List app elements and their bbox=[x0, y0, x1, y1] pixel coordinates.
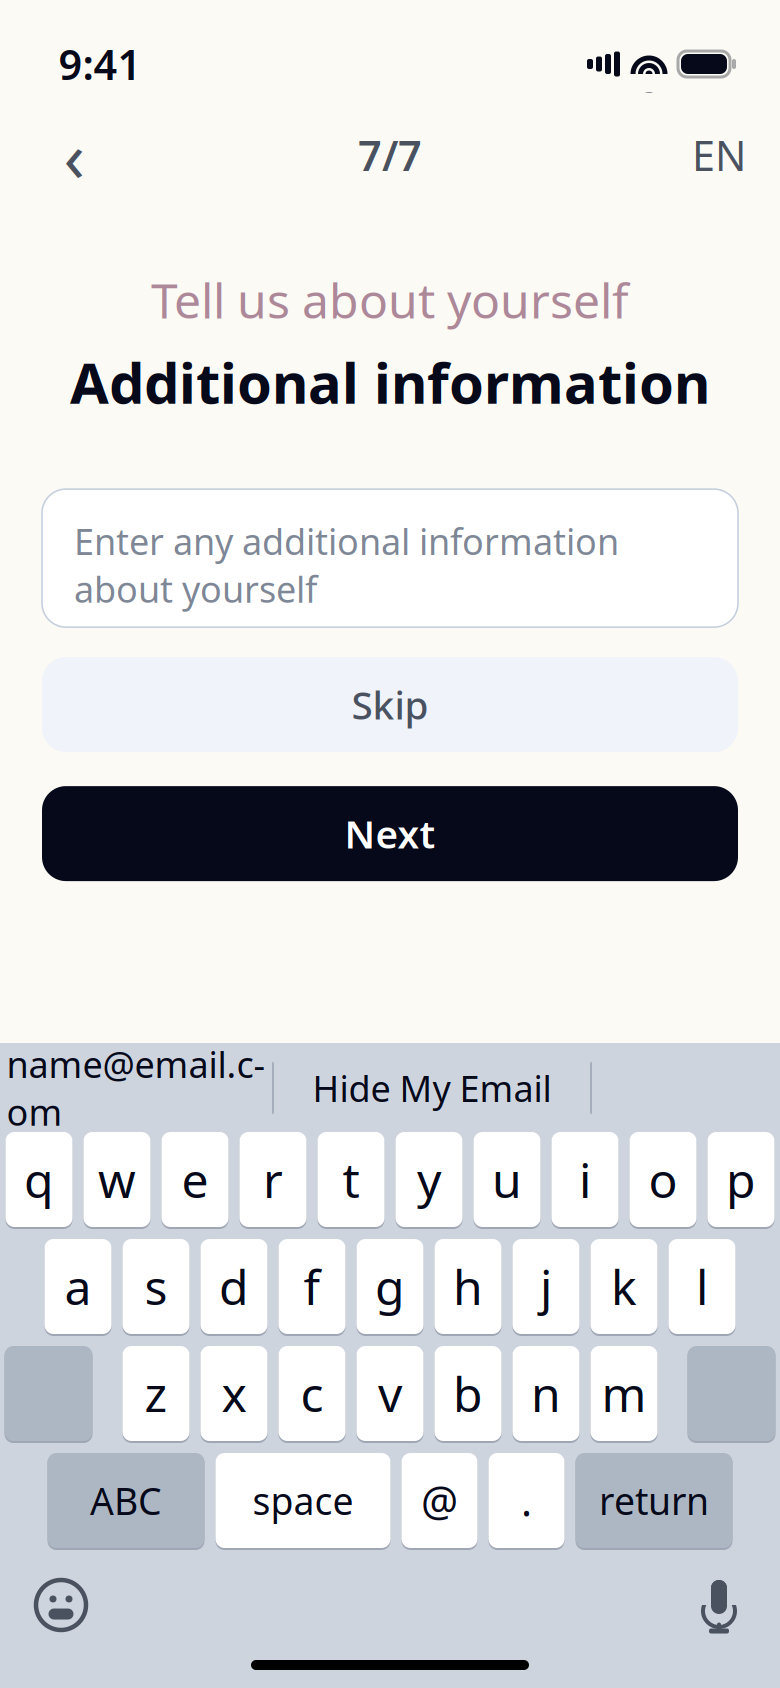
staticText: i bbox=[579, 1148, 591, 1211]
button[interactable]: i bbox=[551, 1133, 618, 1229]
button[interactable]: Back bbox=[34, 116, 114, 194]
button[interactable]: e bbox=[161, 1133, 228, 1229]
button[interactable]: Dictation bbox=[682, 1568, 756, 1642]
button[interactable]: s bbox=[122, 1240, 189, 1336]
button[interactable]: u bbox=[473, 1133, 540, 1229]
button[interactable]: p bbox=[707, 1133, 774, 1229]
staticText: ABC bbox=[90, 1476, 162, 1525]
staticText: t bbox=[342, 1148, 359, 1211]
staticText: w bbox=[98, 1148, 136, 1211]
staticText: 9:41 bbox=[58, 37, 141, 91]
staticText: n bbox=[531, 1362, 561, 1425]
button[interactable]: m bbox=[590, 1347, 657, 1443]
staticText: Tell us about yourself bbox=[151, 268, 629, 332]
button[interactable]: name@email.com bbox=[0, 1051, 272, 1125]
staticText: m bbox=[601, 1362, 646, 1425]
staticText: h bbox=[453, 1255, 483, 1318]
button[interactable]: x bbox=[200, 1347, 267, 1443]
staticText: Skip bbox=[351, 679, 428, 730]
button[interactable]: y bbox=[395, 1133, 462, 1229]
button[interactable]: Shift bbox=[4, 1347, 92, 1443]
staticText: j bbox=[540, 1255, 552, 1318]
button[interactable]: Skip bbox=[42, 657, 738, 752]
staticText: b bbox=[453, 1362, 483, 1425]
button[interactable]: t bbox=[317, 1133, 384, 1229]
staticText: x bbox=[221, 1362, 246, 1425]
staticText: s bbox=[144, 1255, 167, 1318]
button[interactable]: return bbox=[575, 1454, 732, 1550]
staticText: e bbox=[181, 1148, 208, 1211]
staticText: g bbox=[375, 1255, 405, 1318]
staticText: v bbox=[378, 1362, 402, 1425]
button[interactable]: Enter any additional information about y… bbox=[42, 489, 738, 627]
button[interactable]: l bbox=[668, 1240, 735, 1336]
staticText: name@email.com bbox=[6, 1040, 265, 1136]
button[interactable]: n bbox=[512, 1347, 579, 1443]
button[interactable]: d bbox=[200, 1240, 267, 1336]
staticText: f bbox=[303, 1255, 320, 1318]
staticText: z bbox=[144, 1362, 167, 1425]
staticText: Next bbox=[344, 808, 435, 859]
button[interactable]: h bbox=[434, 1240, 501, 1336]
staticText: return bbox=[599, 1476, 709, 1525]
button[interactable]: z bbox=[122, 1347, 189, 1443]
button[interactable]: c bbox=[278, 1347, 345, 1443]
staticText: @ bbox=[421, 1473, 458, 1528]
button[interactable]: r bbox=[239, 1133, 306, 1229]
button[interactable]: . bbox=[488, 1454, 564, 1550]
staticText: y bbox=[417, 1148, 441, 1211]
button[interactable]: Delete bbox=[687, 1347, 775, 1443]
button[interactable]: v bbox=[356, 1347, 423, 1443]
staticText: . bbox=[521, 1473, 532, 1528]
staticText: Additional information bbox=[70, 345, 710, 419]
staticText: d bbox=[219, 1255, 249, 1318]
staticText: p bbox=[726, 1148, 756, 1211]
button[interactable]: o bbox=[629, 1133, 696, 1229]
staticText: ‹ bbox=[63, 109, 84, 201]
button[interactable]: Emoji keyboard bbox=[24, 1568, 98, 1642]
button[interactable]: @ bbox=[401, 1454, 477, 1550]
button[interactable]: space bbox=[215, 1454, 390, 1550]
staticText: a bbox=[64, 1255, 91, 1318]
staticText: l bbox=[696, 1255, 708, 1318]
button[interactable]: g bbox=[356, 1240, 423, 1336]
button[interactable]: j bbox=[512, 1240, 579, 1336]
button[interactable]: EN bbox=[666, 116, 746, 194]
button[interactable]: a bbox=[44, 1240, 111, 1336]
staticText: q bbox=[24, 1148, 54, 1211]
staticText: o bbox=[648, 1148, 677, 1211]
button[interactable]: k bbox=[590, 1240, 657, 1336]
button[interactable]: Next bbox=[42, 786, 738, 881]
staticText: Hide My Email bbox=[312, 1064, 551, 1112]
button[interactable]: f bbox=[278, 1240, 345, 1336]
button[interactable]: ABC bbox=[47, 1454, 204, 1550]
button[interactable]: Hide My Email bbox=[274, 1051, 590, 1125]
staticText: 7/7 bbox=[358, 128, 422, 182]
button[interactable]: w bbox=[83, 1133, 150, 1229]
staticText: Enter any additional information about y… bbox=[74, 517, 619, 613]
staticText: space bbox=[252, 1476, 353, 1525]
button[interactable]: q bbox=[5, 1133, 72, 1229]
button[interactable]: b bbox=[434, 1347, 501, 1443]
staticText: u bbox=[492, 1148, 522, 1211]
staticText: EN bbox=[692, 128, 746, 182]
staticText: c bbox=[300, 1362, 323, 1425]
staticText: k bbox=[611, 1255, 637, 1318]
staticText: r bbox=[263, 1148, 283, 1211]
